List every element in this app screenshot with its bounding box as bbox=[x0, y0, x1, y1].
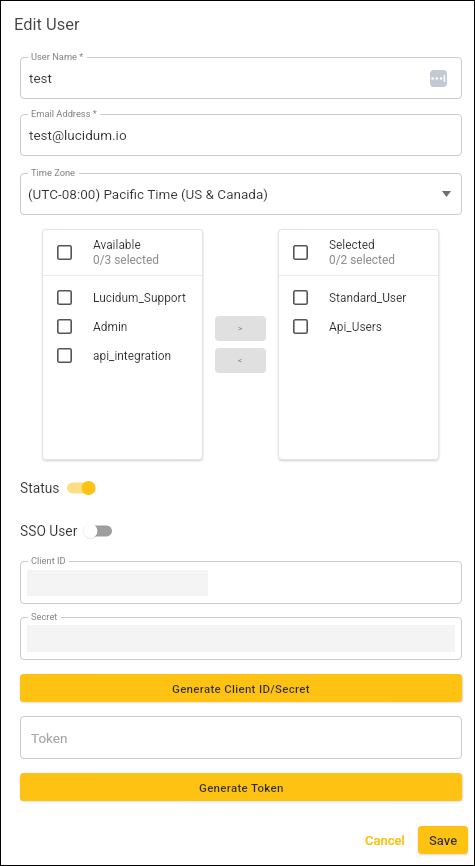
button[interactable]: api_integration bbox=[42, 341, 203, 370]
staticText: api_integration bbox=[93, 349, 172, 363]
staticText: Standard_User bbox=[329, 291, 407, 305]
staticText: Time Zone bbox=[31, 167, 76, 178]
staticText: Cancel bbox=[365, 833, 405, 848]
button[interactable]: Status enabled bbox=[67, 477, 96, 499]
staticText: Token bbox=[31, 730, 68, 746]
staticText: Edit User bbox=[14, 15, 80, 34]
button[interactable] bbox=[20, 773, 462, 801]
staticText: Admin bbox=[93, 320, 128, 334]
button[interactable]: Admin bbox=[42, 312, 203, 341]
button[interactable]: Change password bbox=[430, 70, 447, 87]
staticText: test@lucidum.io bbox=[29, 127, 127, 143]
staticText: Api_Users bbox=[329, 320, 383, 334]
staticText: < bbox=[238, 356, 243, 365]
staticText: 0/3 selected bbox=[93, 253, 159, 267]
staticText: Email Address * bbox=[31, 108, 97, 119]
button[interactable]: Save bbox=[418, 826, 468, 854]
button[interactable]: Api_Users bbox=[278, 312, 439, 341]
staticText: Lucidum_Support bbox=[93, 291, 186, 305]
staticText: User Name * bbox=[31, 51, 84, 62]
staticText: test bbox=[29, 70, 52, 86]
staticText: Client ID bbox=[31, 555, 66, 566]
staticText: (UTC-08:00) Pacific Time (US & Canada) bbox=[28, 186, 268, 202]
staticText: Generate Token bbox=[199, 781, 284, 794]
button[interactable]: Selected bbox=[278, 229, 439, 275]
staticText: Generate Client ID/Secret bbox=[172, 682, 310, 695]
button[interactable]: Standard_User bbox=[278, 283, 439, 312]
staticText: > bbox=[238, 324, 243, 333]
button[interactable]: Move to available bbox=[215, 348, 266, 373]
staticText: Secret bbox=[31, 611, 58, 622]
button[interactable]: SSO user disabled bbox=[84, 520, 113, 542]
staticText: SSO User bbox=[20, 523, 78, 539]
staticText: Status bbox=[20, 480, 60, 496]
staticText: 0/2 selected bbox=[329, 253, 395, 267]
button[interactable]: Token bbox=[20, 716, 462, 759]
staticText: Available bbox=[93, 238, 141, 252]
staticText: Save bbox=[429, 833, 458, 848]
button[interactable]: Lucidum_Support bbox=[42, 283, 203, 312]
button[interactable]: Move to selected bbox=[215, 316, 266, 341]
button[interactable]: Available bbox=[42, 229, 203, 275]
staticText: Selected bbox=[329, 238, 375, 252]
button[interactable] bbox=[20, 674, 462, 702]
button[interactable]: Cancel bbox=[357, 827, 413, 854]
